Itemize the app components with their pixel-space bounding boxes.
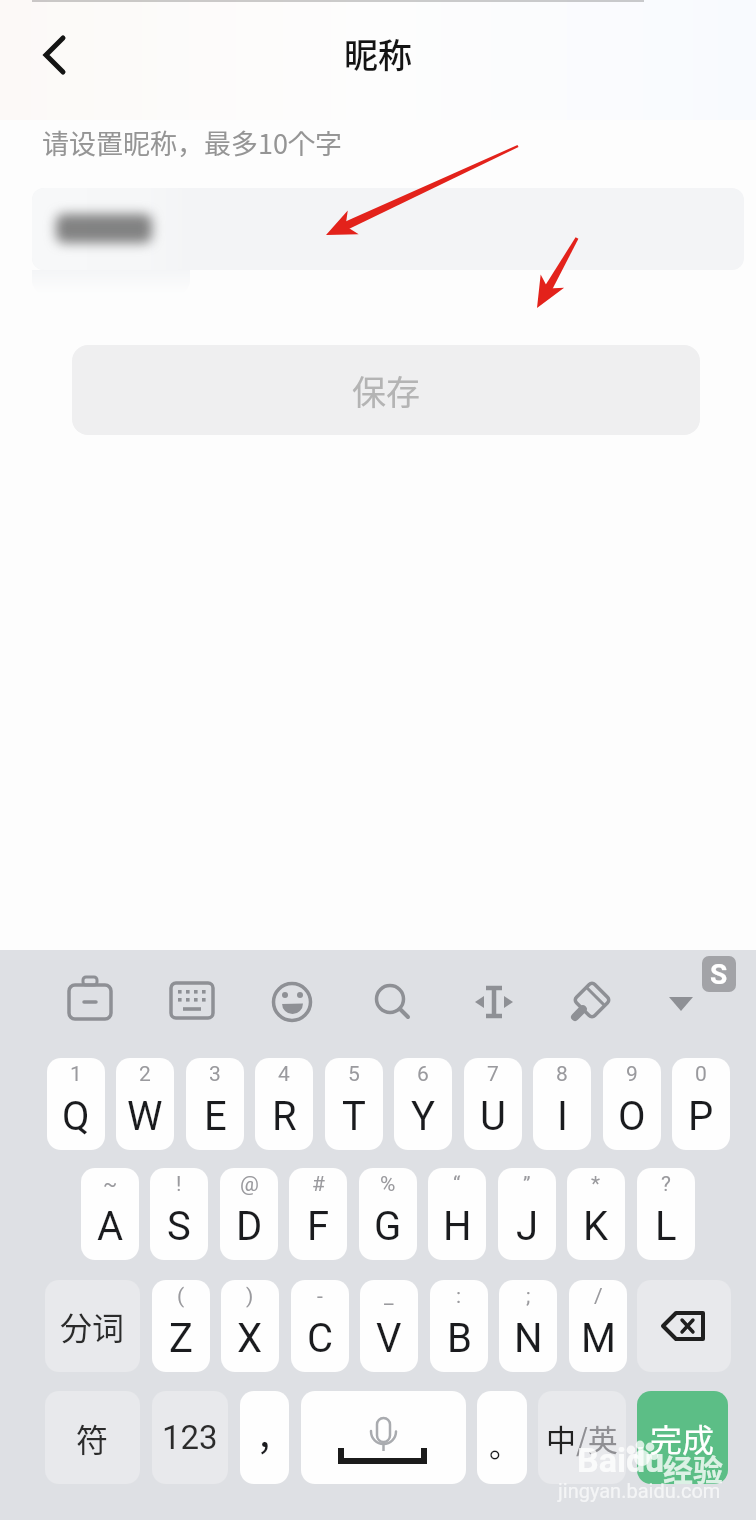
staticText: T bbox=[342, 1093, 366, 1140]
button[interactable]: ( bbox=[152, 1280, 210, 1372]
staticText: A bbox=[97, 1203, 124, 1250]
staticText: 123 bbox=[162, 1418, 218, 1457]
staticText: X bbox=[237, 1315, 263, 1362]
staticText: /英 bbox=[576, 1416, 618, 1459]
staticText: B bbox=[447, 1315, 472, 1362]
button[interactable] bbox=[637, 1280, 731, 1372]
button[interactable]: 5 bbox=[325, 1058, 383, 1150]
button[interactable]: : bbox=[430, 1280, 488, 1372]
staticText: 1 bbox=[70, 1062, 82, 1087]
staticText: ” bbox=[523, 1172, 531, 1197]
staticText: / bbox=[594, 1284, 603, 1309]
staticText: @ bbox=[240, 1172, 259, 1197]
button[interactable]: 0 bbox=[672, 1058, 730, 1150]
staticText: S bbox=[167, 1203, 191, 1250]
button[interactable]: / bbox=[569, 1280, 627, 1372]
staticText: V bbox=[376, 1315, 402, 1362]
staticText: 昵称 bbox=[0, 29, 756, 78]
button[interactable]: 8 bbox=[533, 1058, 591, 1150]
staticText: 分词 bbox=[60, 1303, 125, 1349]
button[interactable] bbox=[30, 26, 86, 82]
staticText: “ bbox=[453, 1172, 461, 1197]
staticText: 完成 bbox=[650, 1415, 715, 1461]
button[interactable]: ; bbox=[499, 1280, 557, 1372]
button[interactable]: 符 bbox=[45, 1391, 140, 1484]
staticText: - bbox=[317, 1284, 323, 1309]
button[interactable]: 4 bbox=[255, 1058, 313, 1150]
button[interactable]: , bbox=[240, 1391, 289, 1484]
staticText: 经验 bbox=[663, 1446, 723, 1489]
staticText: ~ bbox=[103, 1172, 118, 1197]
button[interactable]: ” bbox=[498, 1168, 556, 1260]
button[interactable]: “ bbox=[428, 1168, 486, 1260]
staticText: L bbox=[655, 1203, 677, 1250]
staticText: D bbox=[236, 1203, 263, 1250]
staticText: , bbox=[259, 1401, 271, 1459]
button[interactable] bbox=[301, 1391, 466, 1484]
button[interactable]: 2 bbox=[116, 1058, 174, 1150]
staticText: Z bbox=[169, 1315, 193, 1362]
staticText: 8 bbox=[556, 1062, 568, 1087]
button[interactable]: # bbox=[289, 1168, 347, 1260]
staticText: K bbox=[583, 1203, 609, 1250]
staticText: ; bbox=[526, 1284, 531, 1309]
staticText: M bbox=[581, 1315, 616, 1362]
staticText: ) bbox=[246, 1284, 254, 1309]
button[interactable]: 保存 bbox=[72, 345, 700, 435]
button[interactable]: * bbox=[567, 1168, 625, 1260]
staticText: 5 bbox=[348, 1062, 360, 1087]
button[interactable]: 。 bbox=[477, 1391, 527, 1484]
staticText: ? bbox=[661, 1172, 671, 1197]
staticText: C bbox=[307, 1315, 334, 1362]
staticText: 符 bbox=[76, 1415, 109, 1461]
button[interactable]: 6 bbox=[394, 1058, 452, 1150]
staticText: I bbox=[557, 1093, 568, 1140]
button[interactable]: % bbox=[359, 1168, 417, 1260]
button[interactable]: 7 bbox=[464, 1058, 522, 1150]
staticText: W bbox=[127, 1093, 163, 1140]
button[interactable]: 分词 bbox=[45, 1280, 140, 1372]
button[interactable]: 1 bbox=[47, 1058, 105, 1150]
staticText: R bbox=[272, 1093, 297, 1140]
button[interactable]: 123 bbox=[152, 1391, 228, 1484]
button[interactable]: 3 bbox=[186, 1058, 244, 1150]
staticText: Y bbox=[411, 1093, 436, 1140]
staticText: Baidu bbox=[577, 1440, 665, 1480]
button[interactable]: 9 bbox=[603, 1058, 661, 1150]
button[interactable]: - bbox=[291, 1280, 349, 1372]
button[interactable]: 中 bbox=[538, 1391, 626, 1484]
staticText: * bbox=[591, 1172, 601, 1197]
button[interactable]: @ bbox=[220, 1168, 278, 1260]
staticText: % bbox=[380, 1172, 396, 1197]
staticText: 中 bbox=[546, 1416, 576, 1459]
staticText: 7 bbox=[487, 1062, 499, 1087]
staticText: O bbox=[618, 1093, 646, 1140]
staticText: 保存 bbox=[352, 366, 420, 415]
button[interactable]: ? bbox=[637, 1168, 695, 1260]
staticText: E bbox=[204, 1093, 227, 1140]
staticText: H bbox=[443, 1203, 472, 1250]
staticText: 6 bbox=[417, 1062, 429, 1087]
staticText: 2 bbox=[139, 1062, 151, 1087]
staticText: 3 bbox=[209, 1062, 221, 1087]
button[interactable] bbox=[0, 950, 756, 1020]
staticText: 9 bbox=[626, 1062, 638, 1087]
staticText: F bbox=[307, 1203, 330, 1250]
staticText: # bbox=[312, 1172, 325, 1197]
button[interactable]: 完成 bbox=[637, 1391, 728, 1484]
staticText: N bbox=[514, 1315, 543, 1362]
button[interactable]: ) bbox=[221, 1280, 279, 1372]
staticText: U bbox=[480, 1093, 506, 1140]
staticText: Q bbox=[62, 1093, 90, 1140]
button[interactable]: ~ bbox=[81, 1168, 139, 1260]
button[interactable]: _ bbox=[360, 1280, 418, 1372]
staticText: : bbox=[456, 1284, 462, 1309]
button[interactable]: ! bbox=[150, 1168, 208, 1260]
staticText: jingyan.baidu.com bbox=[558, 1479, 721, 1502]
staticText: _ bbox=[384, 1284, 394, 1309]
staticText: P bbox=[688, 1093, 714, 1140]
button[interactable] bbox=[32, 188, 744, 270]
staticText: 请设置昵称，最多10个字 bbox=[42, 123, 342, 162]
staticText: G bbox=[374, 1203, 402, 1250]
staticText: S bbox=[710, 958, 728, 991]
